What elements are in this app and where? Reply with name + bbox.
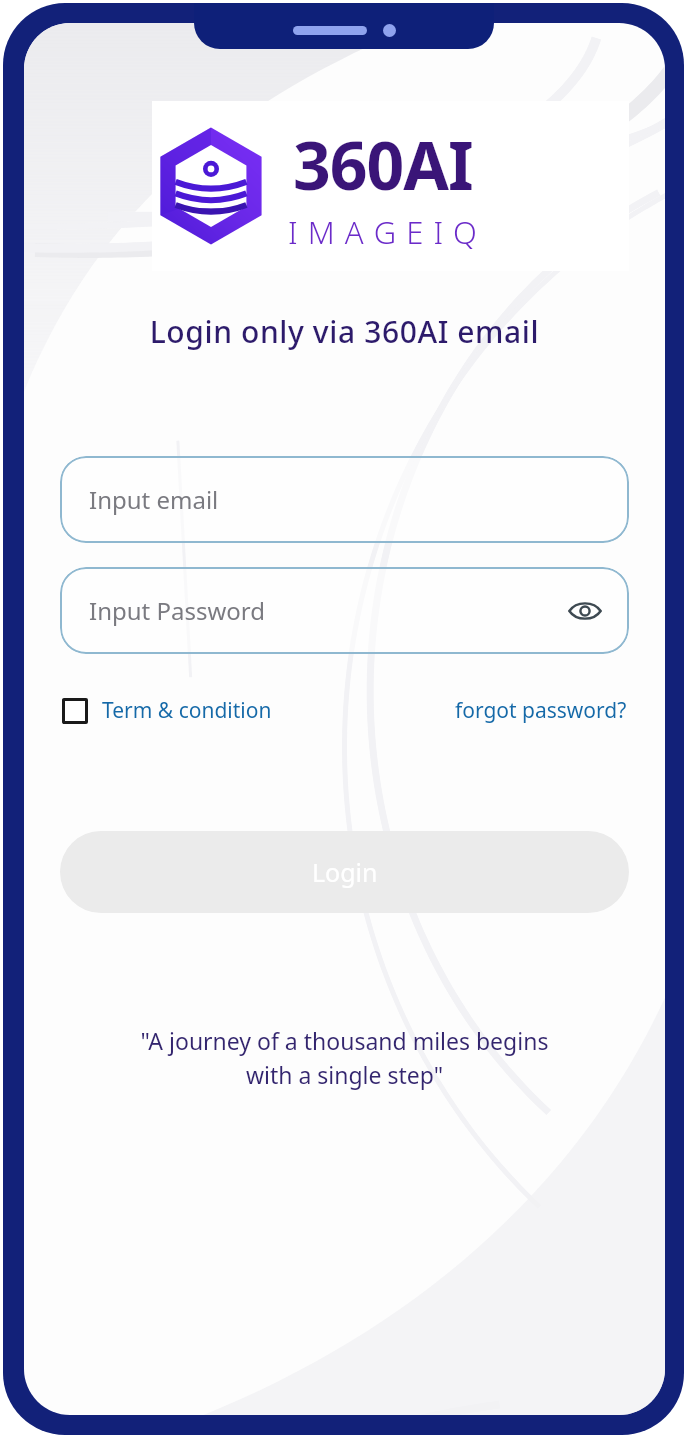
staticText: I M A G E I Q <box>288 211 478 253</box>
staticText: Input Password <box>89 594 266 627</box>
staticText: Input email <box>89 483 219 516</box>
button[interactable]: Login <box>60 831 629 913</box>
button[interactable]: Input Password <box>60 567 629 654</box>
button[interactable]: forgot password? <box>455 696 627 725</box>
staticText: Login <box>312 855 378 889</box>
staticText: Login only via 360AI email <box>24 311 665 352</box>
staticText: "A journey of a thousand miles begins wi… <box>52 1025 637 1090</box>
button[interactable]: Term & condition <box>62 696 272 725</box>
staticText: 360AI <box>293 119 473 209</box>
button[interactable]: Input email <box>60 456 629 543</box>
button[interactable]: Show password <box>563 589 607 633</box>
staticText: forgot password? <box>455 696 627 725</box>
staticText: Term & condition <box>102 696 272 725</box>
